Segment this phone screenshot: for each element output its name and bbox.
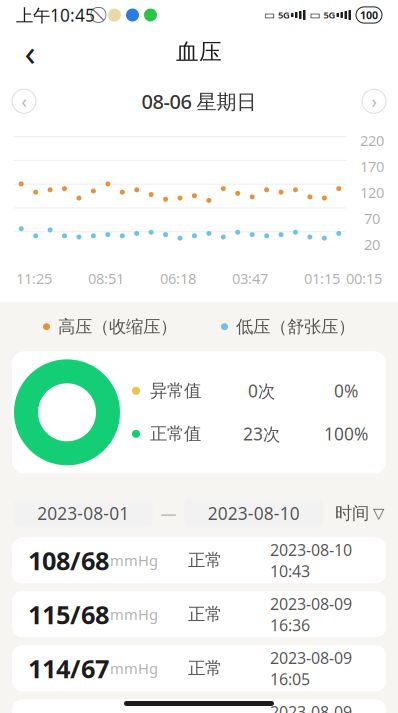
button[interactable]: 返回: [8, 30, 52, 74]
staticText: 170: [360, 157, 384, 176]
staticText: 120: [360, 183, 384, 202]
staticText: 0%: [334, 379, 358, 402]
staticText: 正常: [188, 550, 222, 571]
button[interactable]: 2023-08-10: [184, 499, 323, 527]
staticText: 上午10:45: [16, 3, 95, 26]
button[interactable]: 后一天: [362, 89, 386, 113]
staticText: 2023-08-10 10:43: [270, 539, 352, 582]
staticText: ▭: [309, 8, 320, 22]
staticText: 23次: [243, 422, 280, 445]
button[interactable]: 前一天: [12, 89, 36, 113]
staticText: 03:47: [232, 269, 268, 288]
staticText: 5G: [278, 9, 290, 21]
staticText: 114/67: [28, 651, 109, 685]
staticText: 时间: [335, 503, 369, 524]
staticText: 00:15: [346, 269, 382, 288]
staticText: 11:25: [16, 269, 52, 288]
staticText: ‹: [24, 28, 35, 76]
staticText: ‹: [21, 90, 26, 113]
staticText: 异常值: [150, 380, 201, 401]
staticText: ▭: [264, 8, 275, 22]
staticText: 08:51: [88, 269, 124, 288]
staticText: ⃠: [98, 7, 102, 23]
staticText: 2023-08-09 16:05: [270, 647, 352, 690]
staticText: 低压（舒张压）: [236, 316, 355, 337]
button[interactable]: 114/67: [12, 645, 386, 691]
staticText: 2023-08-01: [37, 502, 129, 525]
staticText: 高压（收缩压）: [58, 316, 177, 337]
staticText: 20: [364, 235, 380, 254]
staticText: 血压: [176, 38, 222, 66]
staticText: 115/68: [28, 597, 109, 631]
button[interactable]: 115/68: [12, 591, 386, 637]
staticText: 2023-08-10: [208, 502, 300, 525]
staticText: 01:15: [304, 269, 340, 288]
staticText: mmHg: [110, 551, 158, 570]
staticText: ▽: [373, 505, 384, 522]
staticText: 5G: [323, 9, 335, 21]
staticText: 0次: [248, 379, 275, 402]
staticText: —: [160, 503, 176, 524]
button[interactable]: 2023-08-01: [14, 499, 152, 527]
staticText: 06:18: [160, 269, 196, 288]
staticText: 70: [364, 209, 380, 228]
button[interactable]: 时间: [323, 499, 384, 527]
staticText: 正常: [188, 604, 222, 625]
staticText: 2023-08-09 15:34: [270, 701, 352, 713]
staticText: mmHg: [110, 605, 158, 624]
staticText: 100%: [324, 422, 368, 445]
button[interactable]: 108/68: [12, 537, 386, 583]
staticText: 100: [360, 8, 378, 22]
staticText: ›: [371, 90, 376, 113]
staticText: 08-06 星期日: [141, 88, 256, 115]
staticText: mmHg: [110, 659, 158, 678]
staticText: 2023-08-09 16:36: [270, 593, 352, 636]
staticText: 正常: [188, 658, 222, 679]
staticText: 220: [360, 131, 384, 150]
staticText: 正常值: [150, 423, 201, 444]
button[interactable]: 110/70: [12, 699, 386, 713]
staticText: 108/68: [28, 543, 109, 577]
